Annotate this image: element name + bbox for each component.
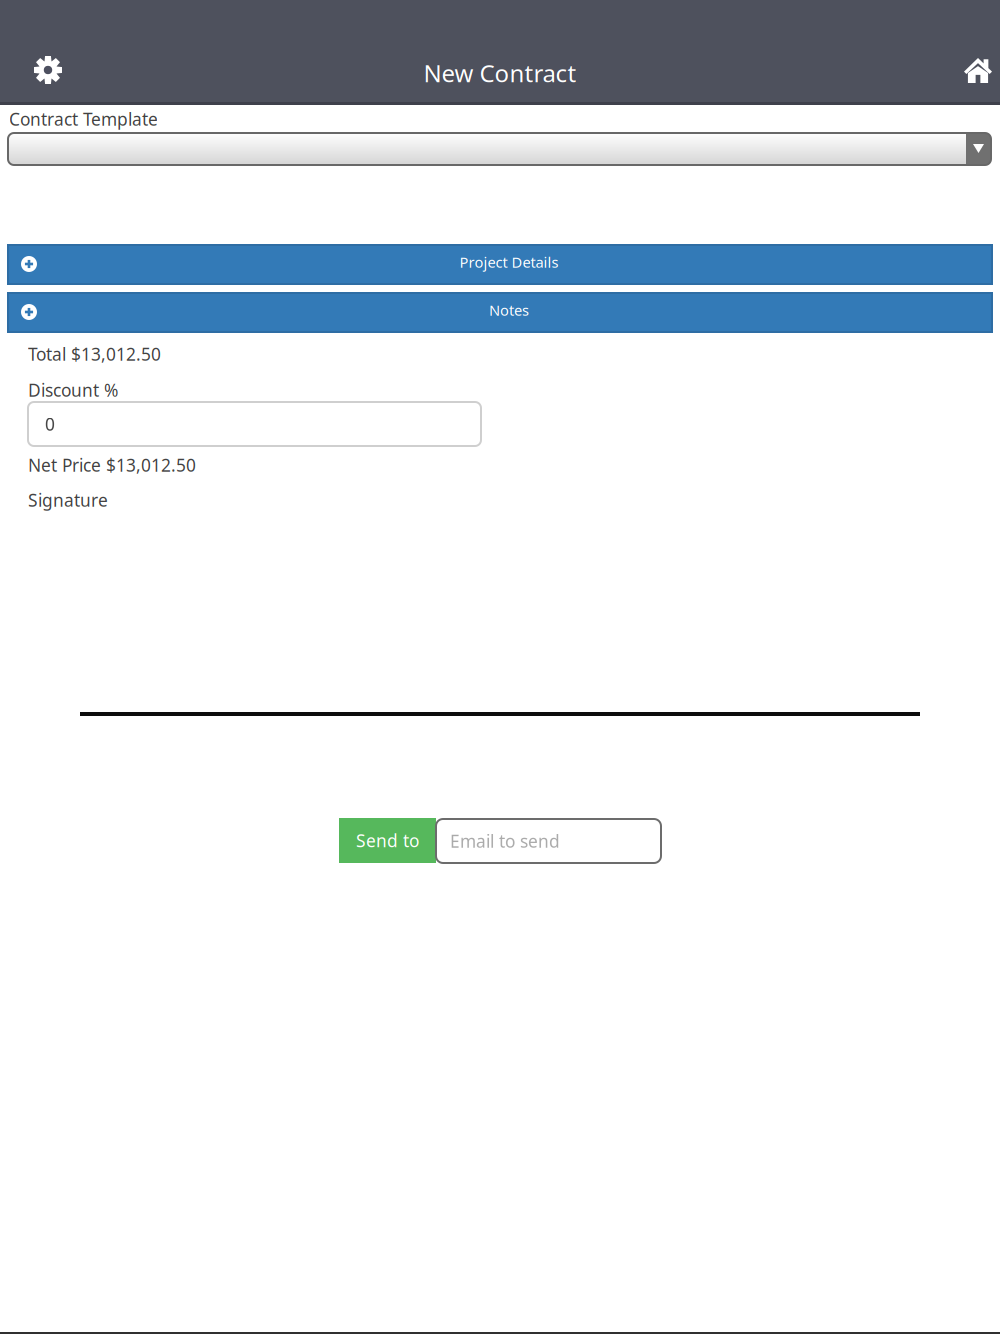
staticText: 0 — [45, 412, 55, 435]
staticText: Net Price $13,012.50 — [28, 453, 196, 476]
staticText: Notes — [489, 300, 529, 320]
button[interactable]: Signature — [80, 520, 920, 716]
button[interactable]: Send to — [339, 818, 436, 863]
button[interactable]: Settings — [0, 0, 100, 104]
staticText: Discount % — [28, 378, 118, 401]
staticText: Project Details — [459, 252, 558, 272]
staticText: Signature — [28, 488, 108, 511]
staticText: Send to — [356, 829, 419, 852]
staticText: Email to send — [450, 829, 560, 852]
staticText: Contract Template — [9, 107, 158, 130]
button[interactable]: Email to send — [436, 819, 661, 863]
button[interactable]: Notes — [8, 293, 992, 332]
button[interactable]: Contract Template — [8, 133, 991, 165]
button[interactable]: Project Details — [8, 245, 992, 284]
staticText: New Contract — [423, 57, 576, 89]
button[interactable]: Home — [900, 0, 1000, 104]
button[interactable]: Discount % — [28, 402, 481, 446]
staticText: Total $13,012.50 — [28, 342, 161, 365]
